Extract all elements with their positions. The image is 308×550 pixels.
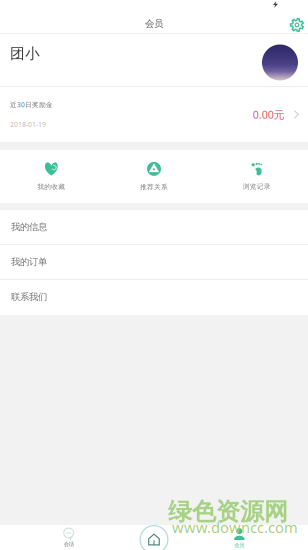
staticText: 联系我们 bbox=[11, 291, 47, 303]
staticText: 0.00元 bbox=[253, 107, 285, 122]
button[interactable]: 浏览记录 bbox=[205, 150, 308, 203]
button[interactable]: 我的收藏 bbox=[0, 150, 103, 203]
staticText: 我的订单 bbox=[11, 256, 47, 268]
staticText: 绿色资源网 bbox=[168, 497, 288, 526]
staticText: 会员 bbox=[145, 18, 163, 29]
button[interactable]: 会话 bbox=[26, 525, 111, 550]
staticText: 我的信息 bbox=[11, 221, 47, 233]
button[interactable]: 联系我们 bbox=[0, 280, 308, 315]
button[interactable]: 推荐关系 bbox=[103, 150, 205, 203]
button[interactable]: Home bbox=[139, 525, 168, 550]
button[interactable]: 我的信息 bbox=[0, 210, 308, 245]
staticText: 浏览记录 bbox=[243, 182, 271, 191]
staticText: 推荐关系 bbox=[140, 183, 168, 191]
button[interactable]: 会员 bbox=[197, 525, 282, 550]
staticText: www.downcc.com bbox=[172, 517, 298, 537]
button[interactable]: 我的订单 bbox=[0, 245, 308, 280]
staticText: 2018-01-19 bbox=[10, 120, 46, 129]
staticText: 会员 bbox=[234, 542, 244, 549]
button[interactable]: Home bbox=[111, 525, 197, 550]
staticText: 我的收藏 bbox=[37, 183, 65, 191]
button[interactable]: Settings bbox=[287, 15, 307, 35]
button[interactable]: 近30日奖励金 bbox=[0, 87, 308, 142]
staticText: 团小 bbox=[10, 44, 40, 62]
staticText: 会话 bbox=[64, 541, 74, 548]
staticText: 近30日奖励金 bbox=[10, 100, 53, 109]
